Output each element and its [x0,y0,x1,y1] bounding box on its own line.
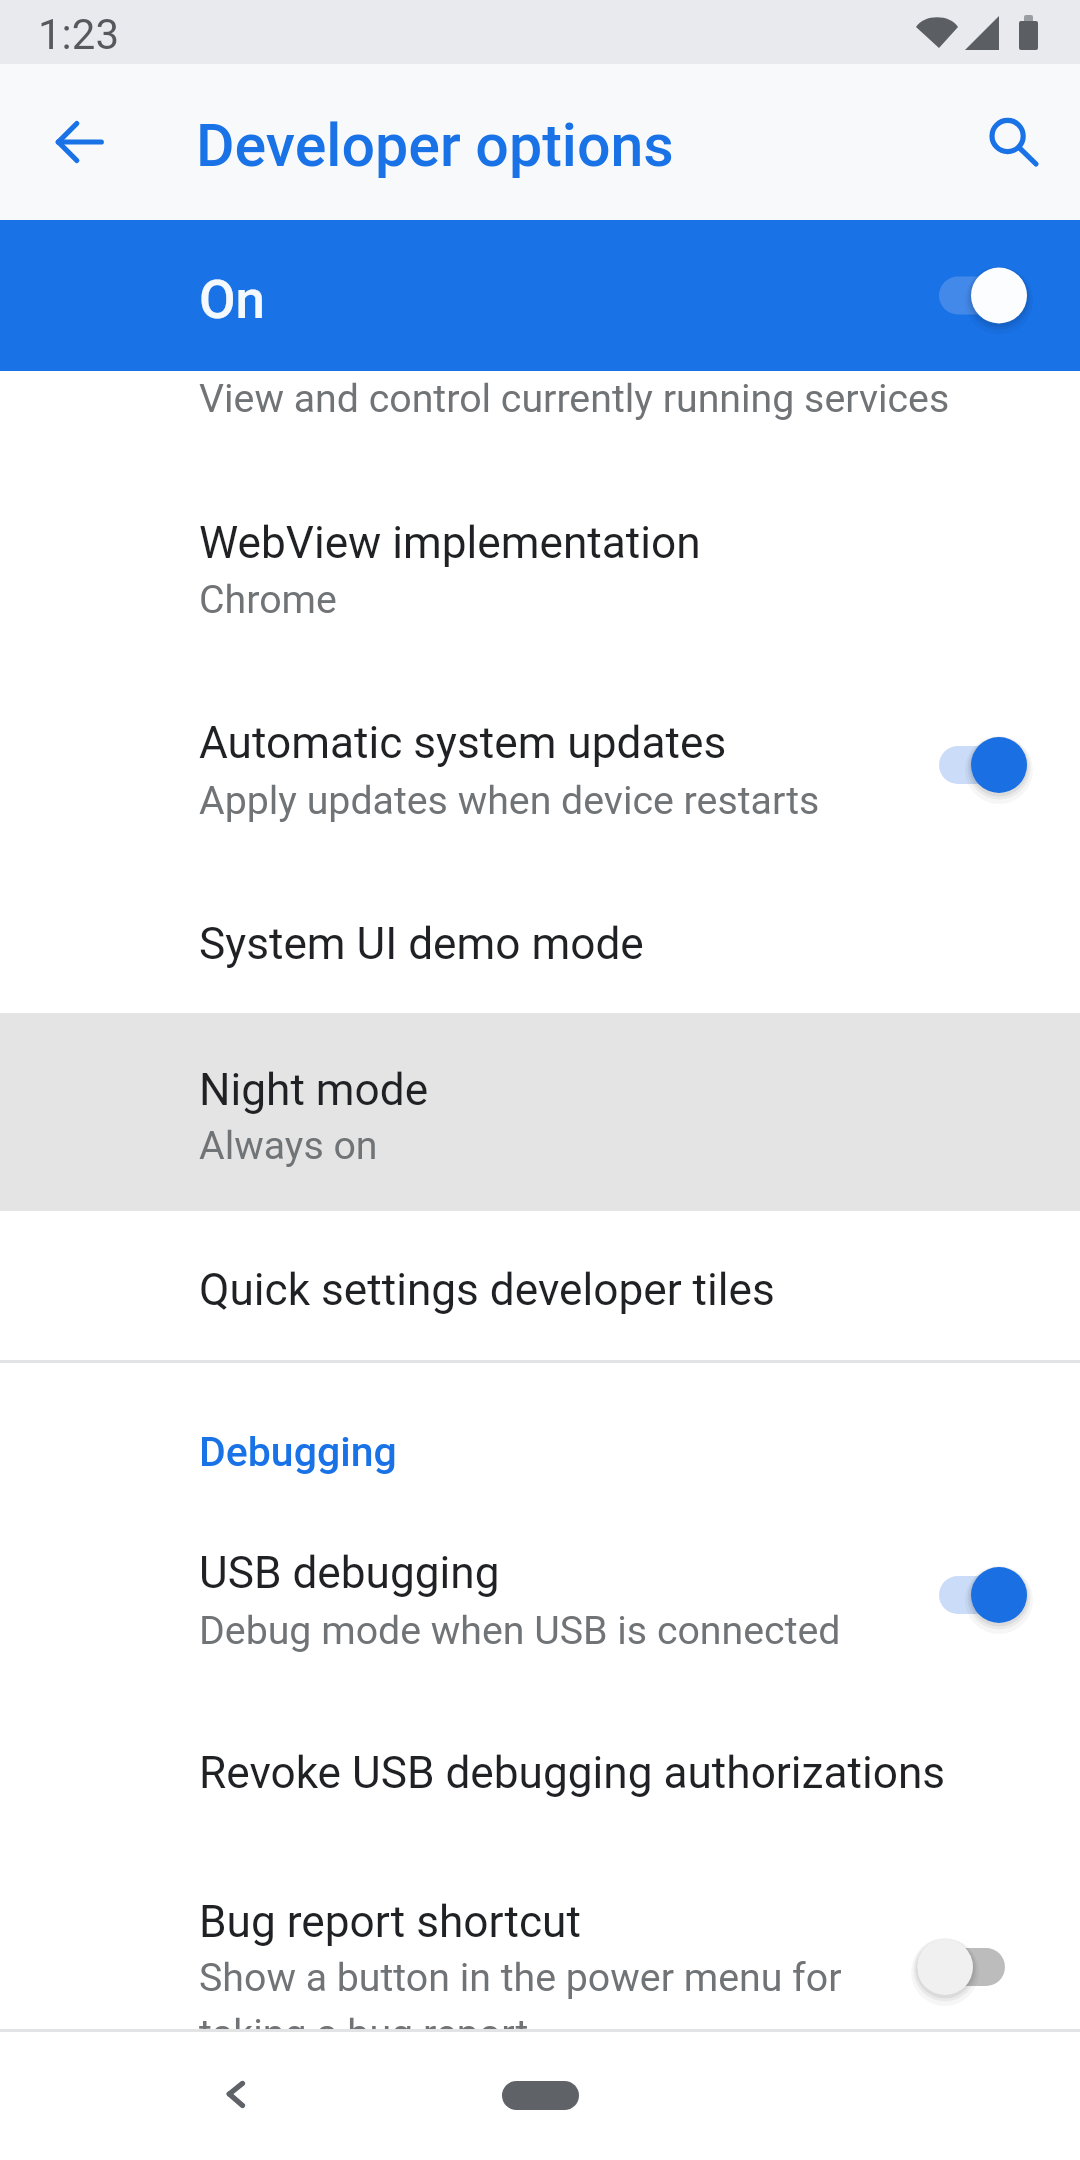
staticText: View and control currently running servi… [199,376,950,422]
staticText: On [199,269,266,331]
button[interactable]: Bug report shortcut switch [873,1895,1017,2039]
button[interactable]: Navigate up [23,86,135,198]
staticText: Apply updates when device restarts [199,778,820,824]
staticText: Quick settings developer tiles [199,1264,775,1316]
button[interactable]: Bug report shortcut [0,1840,1080,2029]
staticText: Night mode [199,1064,429,1116]
button[interactable]: Night mode, Always on [0,1013,1080,1211]
button[interactable]: Search [954,86,1066,198]
staticText: Debug mode when USB is connected [199,1608,841,1654]
button[interactable]: USB debugging switch [927,1523,1071,1667]
staticText: WebView implementation [199,517,701,569]
staticText: System UI demo mode [199,918,644,970]
staticText: 1:23 [38,10,119,59]
button[interactable]: Revoke USB debugging authorizations [0,1690,1080,1834]
button[interactable]: USB debugging [0,1490,1080,1686]
staticText: Revoke USB debugging authorizations [199,1747,946,1799]
button[interactable]: Home [488,2052,593,2136]
staticText: Debugging [199,1428,397,1476]
staticText: Chrome [199,577,337,623]
button[interactable]: Developer options on [0,220,1080,371]
button[interactable]: Automatic system updates [0,660,1080,850]
staticText: Bug report shortcut [199,1896,581,1948]
button[interactable]: Automatic system updates switch [927,693,1071,837]
staticText: Show a button in the power menu for taki… [199,1955,880,2057]
staticText: Developer options [196,111,674,180]
button[interactable]: Back [189,2048,281,2140]
staticText: Always on [199,1123,378,1169]
staticText: USB debugging [199,1547,500,1599]
button[interactable]: System UI demo mode [0,860,1080,1005]
staticText: Automatic system updates [199,717,727,769]
button[interactable]: WebView implementation, Chrome [0,458,1080,648]
button[interactable]: Quick settings developer tiles [0,1211,1080,1360]
